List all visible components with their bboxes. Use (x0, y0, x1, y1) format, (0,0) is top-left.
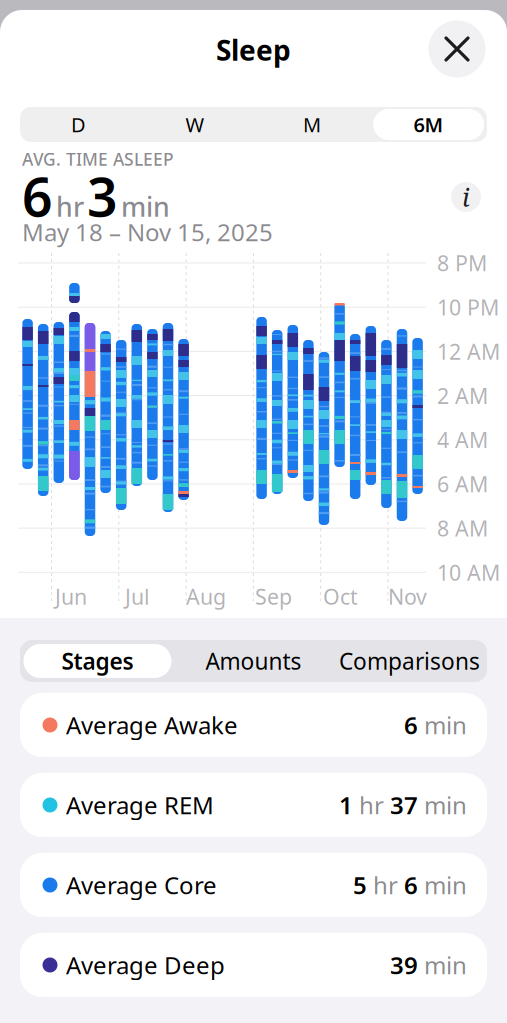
button[interactable]: M (254, 107, 370, 142)
staticText: 6 (404, 709, 418, 741)
staticText: 1 (339, 789, 353, 821)
staticText: Average Deep (66, 949, 225, 981)
staticText: Nov (388, 582, 427, 611)
staticText: Oct (323, 582, 358, 611)
staticText: min (121, 189, 170, 224)
staticText: 6M (414, 111, 444, 138)
staticText: Amounts (205, 646, 301, 676)
staticText: 10 AM (437, 558, 500, 586)
staticText: Average REM (66, 789, 214, 821)
staticText: min (418, 709, 467, 741)
staticText: AVG. TIME ASLEEP (22, 147, 174, 170)
staticText: May 18 – Nov 15, 2025 (22, 216, 273, 248)
staticText: 12 AM (437, 337, 500, 365)
staticText: 6 (404, 869, 418, 901)
staticText: Jul (125, 582, 150, 611)
staticText: 10 PM (437, 293, 499, 321)
staticText: min (418, 789, 467, 821)
staticText: Sep (255, 582, 292, 611)
staticText: Aug (186, 582, 226, 611)
button[interactable]: More information (451, 182, 481, 212)
staticText: Average Core (66, 869, 217, 901)
staticText: 5 (353, 869, 367, 901)
staticText: D (71, 111, 86, 138)
staticText: 8 PM (437, 249, 487, 277)
staticText: hr (367, 869, 404, 901)
staticText: min (418, 949, 467, 981)
staticText: Comparisons (339, 646, 480, 676)
button[interactable]: Amounts (176, 640, 331, 682)
button[interactable]: D (20, 107, 136, 142)
staticText: Sleep (216, 31, 291, 69)
staticText: Stages (61, 646, 133, 676)
button[interactable]: Close (428, 20, 485, 77)
staticText: hr (353, 789, 390, 821)
staticText: 4 AM (437, 426, 488, 454)
staticText: 8 AM (437, 514, 488, 542)
staticText: M (303, 111, 321, 138)
button[interactable]: 6M (371, 107, 487, 142)
staticText: 6 AM (437, 470, 488, 498)
staticText: Average Awake (66, 709, 238, 741)
button[interactable]: Stages (20, 640, 175, 682)
staticText: Jun (55, 582, 87, 611)
staticText: 3 (87, 161, 118, 231)
staticText: 6 (22, 161, 53, 231)
button[interactable]: Comparisons (329, 640, 489, 682)
staticText: 37 (390, 789, 418, 821)
staticText: W (186, 111, 205, 138)
button[interactable]: W (137, 107, 253, 142)
staticText: 39 (390, 949, 418, 981)
staticText: min (418, 869, 467, 901)
staticText: 2 AM (437, 381, 488, 410)
staticText: i (462, 180, 470, 214)
staticText: hr (56, 189, 84, 224)
